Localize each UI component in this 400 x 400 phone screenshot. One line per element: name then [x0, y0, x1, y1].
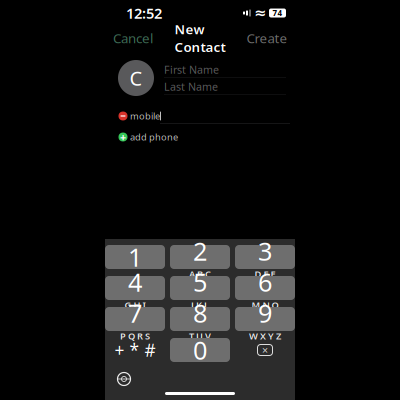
- staticText: 7: [128, 296, 142, 330]
- staticText: W X Y Z: [249, 330, 281, 342]
- staticText: M N O: [251, 299, 278, 311]
- staticText: mobile: [130, 110, 160, 122]
- staticText: ≈: [254, 5, 266, 21]
- staticText: D E F: [254, 268, 275, 280]
- staticText: New Contact: [174, 20, 225, 56]
- button[interactable]: 2: [170, 245, 230, 269]
- staticText: 2: [193, 234, 207, 268]
- button[interactable]: 4: [105, 276, 165, 300]
- button[interactable]: Remove mobile: [116, 108, 130, 124]
- staticText: C: [129, 65, 142, 91]
- staticText: 6: [258, 265, 272, 299]
- button[interactable]: Delete: [235, 338, 295, 362]
- button[interactable]: 0: [170, 338, 230, 362]
- button[interactable]: First Name: [164, 61, 286, 78]
- staticText: 5: [193, 265, 207, 299]
- button[interactable]: 6: [235, 276, 295, 300]
- button[interactable]: Create: [242, 27, 292, 49]
- button[interactable]: mobile: [130, 108, 160, 124]
- button[interactable]: Cancel: [108, 27, 158, 49]
- button[interactable]: 7: [105, 307, 165, 331]
- button[interactable]: +: [116, 128, 290, 146]
- staticText: J K L: [191, 299, 209, 311]
- staticText: add phone: [130, 131, 178, 143]
- staticText: 8: [193, 296, 207, 330]
- button[interactable]: 5: [170, 276, 230, 300]
- staticText: G H I: [124, 299, 145, 311]
- button[interactable]: Add Photo: [114, 56, 158, 100]
- staticText: First Name: [164, 62, 219, 77]
- staticText: P Q R S: [120, 330, 150, 342]
- staticText: 9: [258, 296, 272, 330]
- button[interactable]: 1: [105, 245, 165, 269]
- staticText: 12:52: [126, 3, 162, 23]
- staticText: Cancel: [113, 29, 153, 47]
- button[interactable]: 3: [235, 245, 295, 269]
- staticText: T U V: [189, 330, 211, 342]
- staticText: ×: [262, 343, 268, 357]
- staticText: + * #: [114, 338, 155, 361]
- staticText: 74: [272, 8, 282, 18]
- button[interactable]: 9: [235, 307, 295, 331]
- staticText: Last Name: [164, 79, 218, 94]
- staticText: 4: [128, 265, 142, 299]
- staticText: +: [120, 130, 126, 144]
- staticText: 1: [128, 240, 142, 274]
- staticText: 0: [193, 333, 207, 367]
- button[interactable]: 8: [170, 307, 230, 331]
- button[interactable]: Last Name: [164, 78, 286, 95]
- staticText: A B C: [189, 268, 211, 280]
- staticText: 3: [258, 234, 272, 268]
- button[interactable]: Switch keyboard: [109, 366, 139, 392]
- button[interactable]: + * #: [105, 338, 165, 362]
- staticText: Create: [246, 29, 287, 47]
